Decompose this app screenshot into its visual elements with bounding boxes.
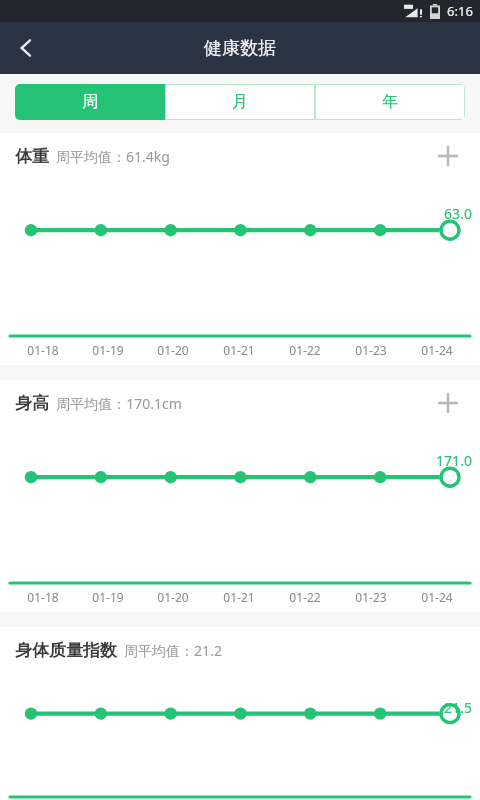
staticText: 身体质量指数 xyxy=(15,640,117,661)
staticText: 01-21 xyxy=(223,589,255,605)
staticText: 63.0 xyxy=(444,204,472,223)
staticText: 01-23 xyxy=(355,342,387,358)
button[interactable]: 身高 xyxy=(0,380,480,612)
staticText: 01-24 xyxy=(421,589,453,605)
staticText: 周 xyxy=(82,92,98,112)
staticText: 年 xyxy=(382,92,398,112)
staticText: 01-23 xyxy=(355,589,387,605)
staticText: 01-18 xyxy=(27,342,59,358)
staticText: 01-19 xyxy=(92,342,124,358)
staticText: 身高 xyxy=(15,393,49,414)
staticText: 体重 xyxy=(15,146,49,167)
staticText: 周平均值：170.1cm xyxy=(56,394,182,413)
staticText: 01-20 xyxy=(157,589,189,605)
staticText: 01-24 xyxy=(421,342,453,358)
button[interactable]: 体重 xyxy=(0,133,480,365)
staticText: 01-22 xyxy=(289,342,321,358)
staticText: 01-22 xyxy=(289,589,321,605)
staticText: 01-20 xyxy=(157,342,189,358)
staticText: 21.5 xyxy=(444,698,472,717)
staticText: 月 xyxy=(232,92,248,112)
button[interactable]: 身体质量指数 xyxy=(0,627,480,800)
staticText: 周平均值：61.4kg xyxy=(56,147,170,166)
staticText: 171.0 xyxy=(436,451,472,470)
button[interactable]: Back xyxy=(0,22,52,74)
button[interactable]: Add record xyxy=(428,136,468,176)
staticText: 01-19 xyxy=(92,589,124,605)
staticText: 周平均值：21.2 xyxy=(124,641,222,660)
staticText: 01-18 xyxy=(27,589,59,605)
button[interactable]: 年 xyxy=(315,84,465,120)
staticText: 01-21 xyxy=(223,342,255,358)
button[interactable]: 周 xyxy=(15,84,165,120)
button[interactable]: Add record xyxy=(428,383,468,423)
staticText: 6:16 xyxy=(447,2,473,20)
staticText: 健康数据 xyxy=(204,37,276,60)
button[interactable]: 月 xyxy=(165,84,315,120)
